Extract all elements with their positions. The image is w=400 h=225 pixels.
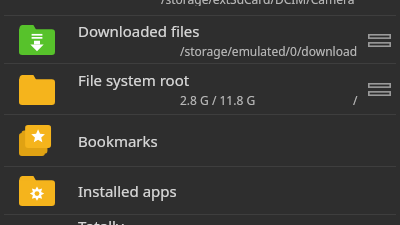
button[interactable]: Downloaded files: [0, 16, 400, 63]
button[interactable]: /storage/extSdCard/DCIM/Camera: [0, 0, 400, 15]
button[interactable]: Reorder: [364, 26, 394, 54]
staticText: Bookmarks: [78, 131, 158, 151]
staticText: /storage/extSdCard/DCIM/Camera: [161, 0, 355, 6]
staticText: Totally: [78, 216, 124, 225]
staticText: 2.8 G / 11.8 G: [180, 92, 256, 108]
staticText: Downloaded files: [78, 21, 200, 41]
button[interactable]: Reorder: [364, 75, 394, 103]
staticText: /: [353, 92, 358, 108]
button[interactable]: File system root: [0, 64, 400, 114]
button[interactable]: Installed apps: [0, 167, 400, 214]
staticText: Installed apps: [78, 181, 177, 201]
staticText: File system root: [78, 70, 190, 90]
button[interactable]: Bookmarks: [0, 115, 400, 166]
button[interactable]: Totally: [0, 214, 400, 225]
staticText: /storage/emulated/0/download: [180, 43, 358, 59]
